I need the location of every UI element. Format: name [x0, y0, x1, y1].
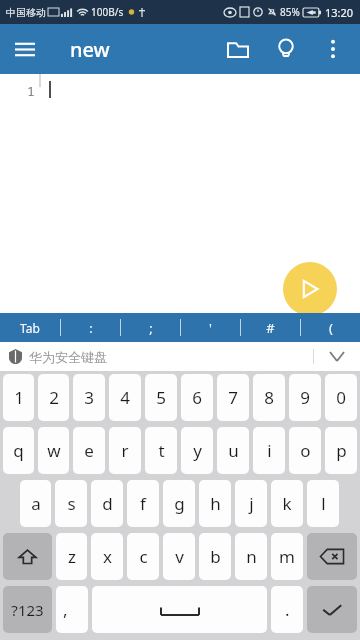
staticText: h [210, 492, 221, 515]
staticText: c [139, 545, 148, 568]
button[interactable]: h [199, 480, 231, 527]
button[interactable]: 9 [289, 374, 321, 421]
button[interactable]: v [163, 533, 195, 580]
other: Space [161, 605, 199, 615]
staticText: ( [329, 319, 333, 337]
button[interactable]: j [235, 480, 267, 527]
button[interactable]: 5 [145, 374, 177, 421]
button[interactable]: More options [310, 26, 356, 72]
staticText: : [89, 319, 93, 337]
staticText: . [285, 598, 290, 621]
staticText: f [140, 492, 146, 515]
button[interactable]: x [91, 533, 123, 580]
button[interactable]: q [3, 427, 34, 474]
button[interactable]: ' [181, 313, 240, 342]
other: Enter [321, 603, 343, 617]
button[interactable]: u [217, 427, 249, 474]
staticText: 5 [156, 386, 166, 409]
button[interactable]: Collapse keyboard [314, 342, 360, 371]
staticText: i [267, 439, 272, 462]
button[interactable]: 2 [38, 374, 69, 421]
staticText: e [84, 439, 94, 462]
staticText: new [70, 36, 110, 63]
staticText: r [121, 439, 129, 462]
staticText: ; [149, 319, 153, 337]
button[interactable]: Enter [307, 586, 357, 633]
staticText: 6 [192, 386, 202, 409]
button[interactable]: s [55, 480, 87, 527]
button[interactable]: , [56, 586, 88, 633]
button[interactable]: 4 [109, 374, 141, 421]
staticText: 1 [27, 82, 35, 100]
button[interactable]: Tab [0, 313, 60, 342]
staticText: 4 [120, 386, 130, 409]
button[interactable]: . [271, 586, 303, 633]
button[interactable]: Hint [262, 25, 310, 73]
button[interactable]: f [127, 480, 159, 527]
button[interactable]: 0 [325, 374, 357, 421]
button[interactable]: a [20, 480, 51, 527]
other: Backspace [320, 548, 344, 565]
button[interactable]: 3 [73, 374, 105, 421]
staticText: k [282, 492, 292, 515]
staticText: 13:20 [325, 5, 354, 20]
button[interactable]: r [109, 427, 141, 474]
staticText: s [67, 492, 76, 515]
button[interactable]: ( [301, 313, 360, 342]
staticText: Tab [20, 320, 40, 336]
staticText: 3 [84, 386, 94, 409]
staticText: p [336, 439, 347, 462]
button[interactable]: t [145, 427, 177, 474]
staticText: b [210, 545, 221, 568]
button[interactable]: p [325, 427, 357, 474]
staticText: 0 [336, 386, 346, 409]
staticText: l [321, 492, 326, 515]
staticText: g [174, 492, 185, 515]
button[interactable]: g [163, 480, 195, 527]
button[interactable]: ; [121, 313, 180, 342]
staticText: a [31, 492, 41, 515]
button[interactable]: d [91, 480, 123, 527]
button[interactable]: b [199, 533, 231, 580]
button[interactable]: 6 [181, 374, 213, 421]
button[interactable]: e [73, 427, 105, 474]
staticText: 100B/s [91, 5, 124, 19]
button[interactable]: i [253, 427, 285, 474]
staticText: 1 [14, 386, 24, 409]
button[interactable]: Space [92, 586, 267, 633]
staticText: 华为安全键盘 [29, 349, 107, 365]
staticText: 85% [280, 5, 300, 19]
button[interactable]: y [181, 427, 213, 474]
button[interactable]: Open folder [214, 25, 262, 73]
staticText: # [266, 319, 275, 337]
staticText: 2 [49, 386, 59, 409]
button[interactable]: z [56, 533, 87, 580]
staticText: m [279, 545, 295, 568]
staticText: , [63, 598, 68, 621]
staticText: ?123 [11, 600, 44, 620]
button[interactable]: m [271, 533, 303, 580]
button[interactable]: 7 [217, 374, 249, 421]
staticText: n [246, 545, 257, 568]
button[interactable]: ?123 [3, 586, 52, 633]
button[interactable]: # [241, 313, 300, 342]
staticText: t [158, 439, 165, 462]
button[interactable]: : [61, 313, 120, 342]
button[interactable]: Menu [0, 24, 50, 74]
button[interactable]: Run [283, 262, 337, 316]
button[interactable]: n [235, 533, 267, 580]
button[interactable]: Shift [3, 533, 52, 580]
button[interactable]: k [271, 480, 303, 527]
button[interactable]: w [38, 427, 69, 474]
staticText: q [13, 439, 24, 462]
staticText: 8 [264, 386, 274, 409]
button[interactable]: c [127, 533, 159, 580]
button[interactable]: Backspace [307, 533, 357, 580]
staticText: d [102, 492, 113, 515]
staticText: 9 [300, 386, 310, 409]
button[interactable]: o [289, 427, 321, 474]
button[interactable]: l [307, 480, 339, 527]
button[interactable]: 8 [253, 374, 285, 421]
button[interactable]: 1 [3, 374, 34, 421]
staticText: j [249, 492, 254, 515]
